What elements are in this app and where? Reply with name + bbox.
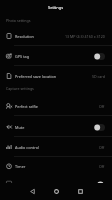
staticText: GPS tag [15, 54, 29, 59]
staticText: Off [99, 145, 105, 150]
staticText: Off [99, 164, 105, 169]
staticText: SD card [92, 74, 105, 79]
staticText: Off [99, 104, 105, 109]
staticText: 13 MP (4:3) 4160 x 3120 [65, 34, 105, 39]
button[interactable]: Perfect selfie [0, 96, 112, 116]
staticText: Preferred save location [15, 74, 57, 79]
staticText: Capture settings [6, 86, 34, 91]
button[interactable]: Preferred save location [0, 66, 112, 86]
staticText: Photo settings [6, 18, 31, 23]
staticText: Settings [48, 5, 64, 10]
staticText: Perfect selfie [15, 104, 39, 109]
button[interactable]: Mute [0, 117, 112, 137]
button[interactable]: Timer [0, 156, 112, 176]
staticText: Mute [15, 125, 25, 130]
button[interactable]: Home [45, 183, 67, 200]
button[interactable]: Audio control [0, 137, 112, 157]
button[interactable]: GPS tag [0, 46, 112, 66]
staticText: Timer [15, 164, 26, 169]
staticText: Audio control [15, 145, 39, 150]
button[interactable]: Recent apps [69, 183, 91, 200]
button[interactable]: Back [21, 183, 43, 200]
staticText: Resolution [15, 34, 34, 39]
button[interactable]: Resolution [0, 26, 112, 46]
